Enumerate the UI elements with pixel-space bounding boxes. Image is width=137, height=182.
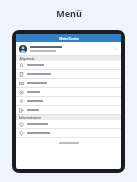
button[interactable] bbox=[16, 42, 121, 55]
other: DOC bbox=[19, 72, 24, 77]
other: LOGOUT bbox=[19, 108, 24, 113]
button[interactable]: BELL bbox=[16, 97, 121, 105]
button[interactable]: PERSON bbox=[16, 61, 121, 69]
other: INFO bbox=[19, 122, 24, 127]
staticText: Informationen bbox=[19, 116, 41, 120]
other: GEAR bbox=[19, 90, 24, 95]
staticText: Menü bbox=[56, 7, 82, 19]
other: SHIELD bbox=[19, 131, 24, 136]
button[interactable]: INFO bbox=[16, 120, 121, 128]
staticText: Mein Konto bbox=[59, 36, 79, 41]
button[interactable]: LOGOUT bbox=[16, 106, 121, 114]
button[interactable]: CARD bbox=[16, 79, 121, 87]
staticText: Allgemein bbox=[19, 57, 35, 61]
button[interactable]: GEAR bbox=[16, 88, 121, 96]
other: PERSON bbox=[19, 63, 24, 68]
other: BELL bbox=[19, 99, 24, 104]
button[interactable]: SHIELD bbox=[16, 129, 121, 137]
other: CARD bbox=[19, 81, 24, 86]
button[interactable]: DOC bbox=[16, 70, 121, 78]
